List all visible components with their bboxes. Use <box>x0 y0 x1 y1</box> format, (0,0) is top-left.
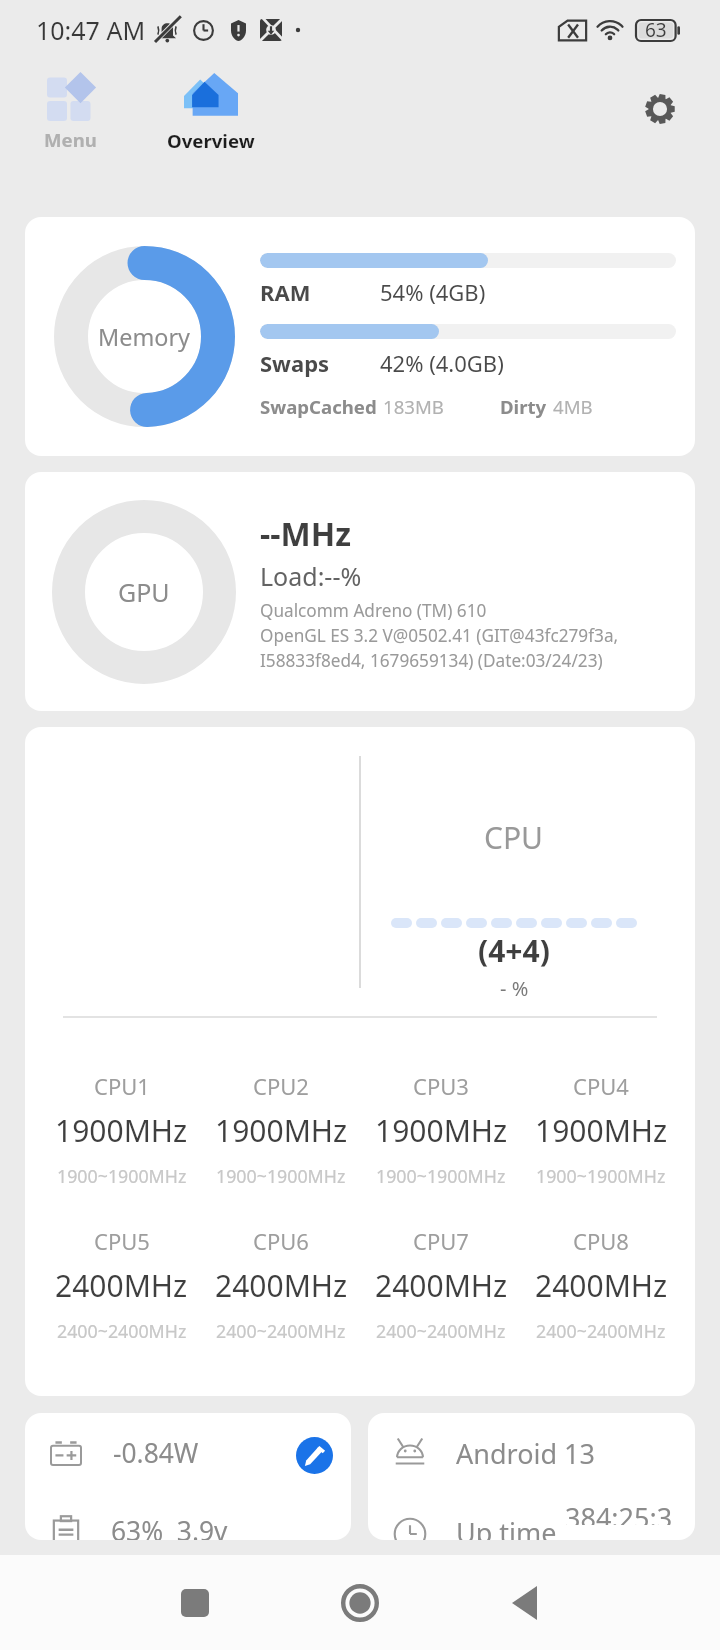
staticText: 1900~1900MHz <box>536 1164 666 1188</box>
staticText: CPU <box>484 817 544 858</box>
staticText: Overview <box>167 128 255 153</box>
button[interactable]: GPU <box>25 472 695 711</box>
staticText: 4MB <box>553 394 593 419</box>
staticText: CPU4 <box>573 1071 629 1101</box>
staticText: 2400~2400MHz <box>376 1319 506 1343</box>
staticText: 2400MHz <box>535 1265 668 1306</box>
staticText: 63 <box>645 17 667 43</box>
staticText: RAM <box>260 277 311 307</box>
staticText: CPU3 <box>413 1071 469 1101</box>
staticText: 2400~2400MHz <box>216 1319 346 1343</box>
button[interactable]: Overview <box>146 70 276 153</box>
staticText: 63% 3.9v <box>111 1513 228 1540</box>
staticText: 42% (4.0GB) <box>380 348 504 378</box>
staticText: SwapCached <box>260 394 377 419</box>
button[interactable]: -0.84W <box>25 1413 351 1540</box>
button[interactable]: Edit <box>296 1437 333 1474</box>
staticText: 1900~1900MHz <box>57 1164 187 1188</box>
staticText: Dirty <box>500 394 547 419</box>
staticText: 2400MHz <box>215 1265 348 1306</box>
button[interactable]: Android 13 <box>368 1413 695 1540</box>
staticText: Menu <box>44 127 97 152</box>
staticText: Swaps <box>260 348 330 378</box>
staticText: CPU5 <box>94 1226 150 1256</box>
button[interactable]: Menu <box>23 64 117 152</box>
staticText: I58833f8ed4, 1679659134) (Date:03/24/23) <box>260 649 603 672</box>
staticText: 384:25:3 <box>565 1499 673 1525</box>
staticText: 54% (4GB) <box>380 277 486 307</box>
staticText: -0.84W <box>113 1435 199 1471</box>
staticText: GPU <box>118 575 170 609</box>
staticText: Android 13 <box>456 1435 595 1472</box>
staticText: OpenGL ES 3.2 V@0502.41 (GIT@43fc279f3a, <box>260 624 619 647</box>
button[interactable]: Back <box>500 1579 548 1627</box>
button[interactable]: Settings <box>622 71 698 147</box>
staticText: 1900MHz <box>535 1110 668 1151</box>
staticText: --MHz <box>260 512 351 556</box>
staticText: (4+4) <box>478 930 550 971</box>
staticText: CPU7 <box>413 1226 469 1256</box>
staticText: 1900MHz <box>55 1110 188 1151</box>
staticText: 10:47 AM <box>36 13 146 47</box>
staticText: CPU8 <box>573 1226 629 1256</box>
button[interactable]: Memory <box>25 217 695 456</box>
staticText: - % <box>500 975 529 1002</box>
button[interactable]: Home <box>336 1579 384 1627</box>
staticText: CPU1 <box>94 1071 150 1101</box>
staticText: 183MB <box>383 394 444 419</box>
staticText: Qualcomm Adreno (TM) 610 <box>260 599 487 622</box>
staticText: 1900MHz <box>375 1110 508 1151</box>
staticText: 2400MHz <box>375 1265 508 1306</box>
staticText: 1900MHz <box>215 1110 348 1151</box>
staticText: Memory <box>98 321 191 353</box>
staticText: 1900~1900MHz <box>216 1164 346 1188</box>
staticText: 2400MHz <box>55 1265 188 1306</box>
staticText: 1900~1900MHz <box>376 1164 506 1188</box>
button[interactable]: Recent apps <box>171 1579 219 1627</box>
staticText: Load:--% <box>260 559 362 593</box>
staticText: 2400~2400MHz <box>536 1319 666 1343</box>
button[interactable]: CPU <box>25 727 695 1396</box>
staticText: CPU6 <box>253 1226 309 1256</box>
staticText: 2400~2400MHz <box>57 1319 187 1343</box>
staticText: CPU2 <box>253 1071 309 1101</box>
staticText: Up time <box>456 1514 557 1540</box>
